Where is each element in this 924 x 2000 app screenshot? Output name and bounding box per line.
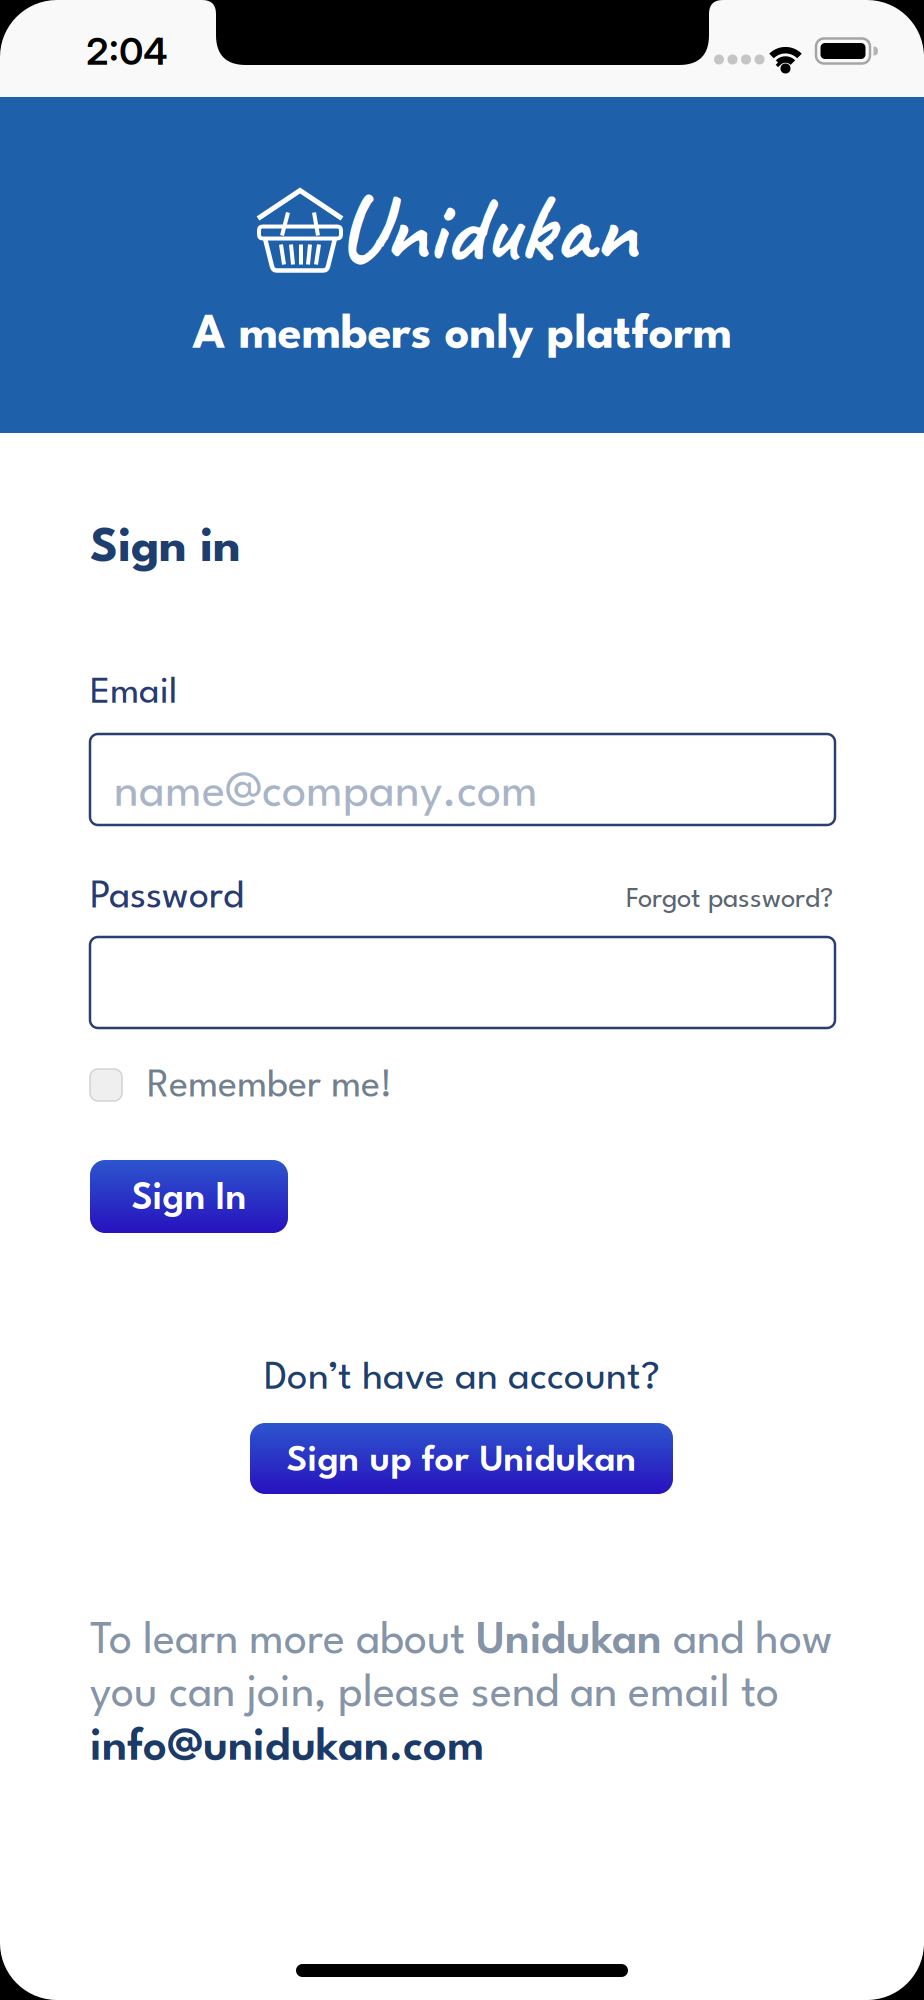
button[interactable]: Forgot password? (626, 887, 833, 913)
staticText: A members only platform (192, 314, 731, 358)
staticText: To learn more about Unidukan and how (90, 1621, 832, 1663)
button[interactable]: Unidukan (337, 168, 636, 288)
staticText: Don’t have an account? (264, 1360, 660, 1398)
staticText: Sign In (131, 1181, 246, 1217)
button[interactable]: Sign up for Unidukan (250, 1423, 673, 1494)
button[interactable] (251, 176, 351, 276)
staticText: Password (90, 880, 244, 916)
staticText: Forgot password? (626, 887, 833, 913)
button[interactable]: name@company.com (90, 734, 835, 825)
staticText: Remember me! (147, 1069, 392, 1105)
staticText: Sign in (90, 526, 241, 572)
staticText: you can join, please send an email to (90, 1674, 779, 1716)
staticText: info@unidukan.com (90, 1727, 484, 1770)
staticText: name@company.com (114, 772, 538, 816)
button[interactable]: Remember me! (90, 1067, 392, 1103)
staticText: Unidukan (337, 168, 636, 288)
button[interactable] (90, 937, 835, 1028)
button[interactable]: Sign In (90, 1160, 288, 1233)
staticText: 2:04 (86, 28, 168, 74)
button[interactable]: info@unidukan.com (90, 1727, 484, 1770)
staticText: Email (90, 676, 177, 711)
staticText: Sign up for Unidukan (286, 1444, 636, 1479)
